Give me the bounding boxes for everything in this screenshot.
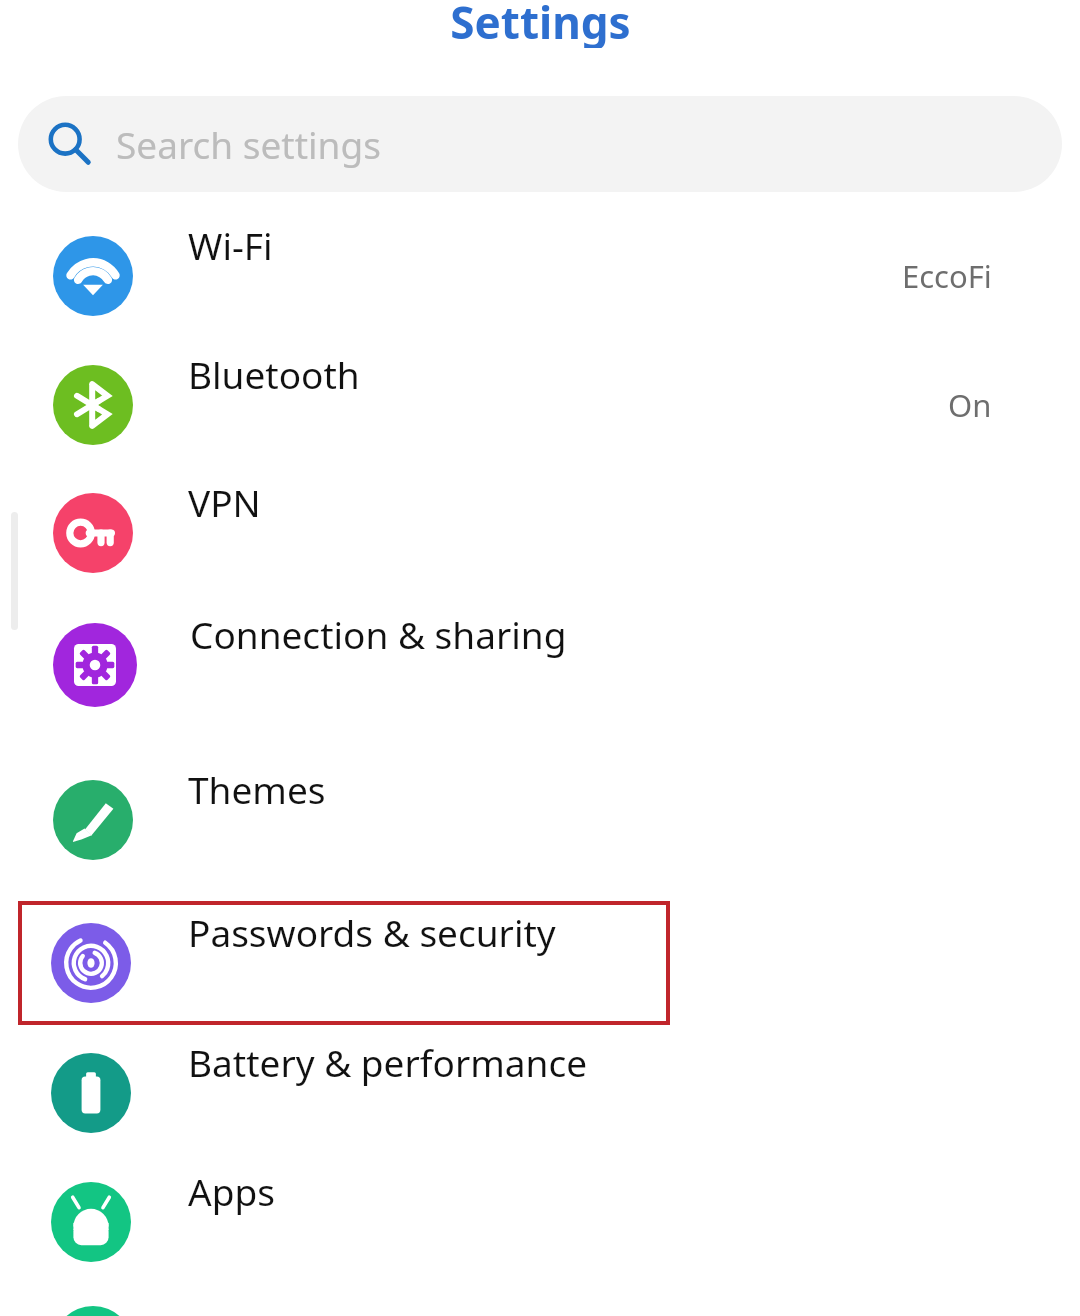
- staticText: Connection & sharing: [190, 609, 567, 659]
- staticText: Search settings: [116, 119, 381, 169]
- staticText: Apps: [188, 1166, 275, 1216]
- button[interactable]: Battery & performance: [0, 1037, 1080, 1149]
- staticText: EccoFi: [902, 255, 992, 297]
- button[interactable]: Search settings: [18, 96, 1062, 192]
- button[interactable]: Themes: [0, 764, 1080, 876]
- staticText: Settings: [450, 0, 631, 48]
- staticText: Battery & performance: [188, 1037, 588, 1087]
- staticText: VPN: [188, 477, 261, 527]
- button[interactable]: Wi-Fi: [0, 220, 1080, 332]
- staticText: Passwords & security: [188, 907, 556, 957]
- staticText: Bluetooth: [188, 349, 360, 399]
- staticText: Themes: [188, 764, 326, 814]
- staticText: On: [948, 384, 992, 426]
- button[interactable]: Apps: [0, 1166, 1080, 1278]
- staticText: Wi-Fi: [188, 220, 273, 270]
- button[interactable]: Passwords & security: [0, 907, 1080, 1019]
- button[interactable]: Connection & sharing: [0, 609, 1080, 721]
- button[interactable]: VPN: [0, 477, 1080, 589]
- button[interactable]: Bluetooth: [0, 349, 1080, 461]
